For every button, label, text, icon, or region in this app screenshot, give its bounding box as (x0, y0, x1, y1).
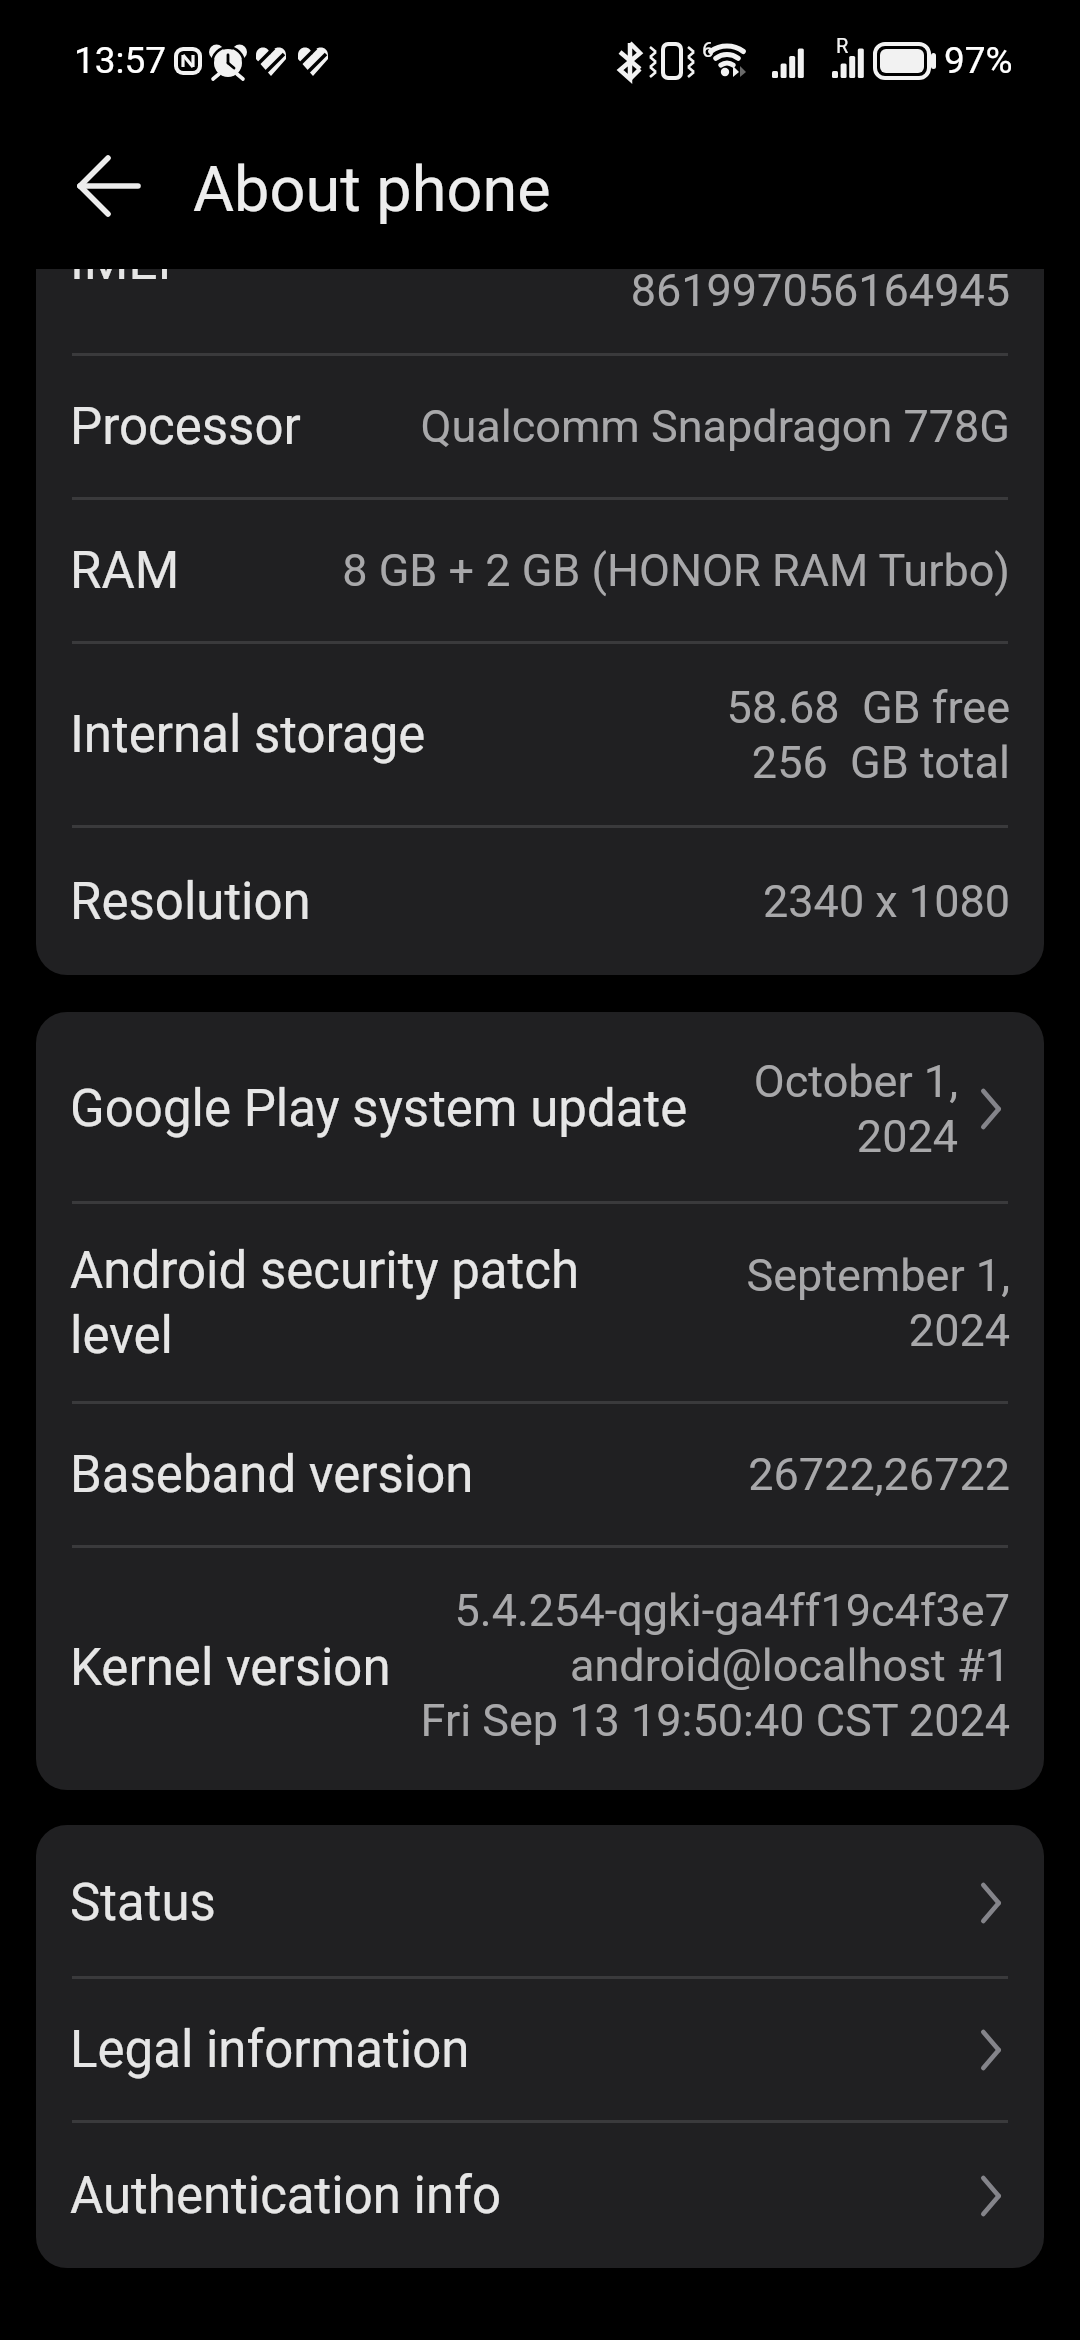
button[interactable]: Google Play system update (36, 1016, 1044, 1201)
staticText: 861997056164945 (630, 269, 1010, 317)
staticText: Status (70, 1873, 216, 1933)
staticText: Authentication info (70, 2166, 501, 2226)
button[interactable]: Android security patch level (36, 1204, 1044, 1401)
button[interactable]: Status (36, 1829, 1044, 1976)
staticText: R (836, 34, 849, 57)
staticText: Android security patch level (70, 1241, 580, 1365)
staticText: Qualcomm Snapdragon 778G (420, 400, 1010, 453)
staticText: October 1, 2024 (753, 1055, 958, 1163)
staticText: 6 (702, 38, 714, 63)
staticText: Kernel version (70, 1638, 391, 1698)
button[interactable]: RAM (36, 500, 1044, 641)
staticText: 58.68 GB free 256 GB total (726, 681, 1010, 789)
staticText: September 1, 2024 (746, 1249, 1010, 1357)
staticText: 97% (944, 39, 1013, 82)
staticText: 8 GB + 2 GB (HONOR RAM Turbo) (342, 544, 1010, 597)
button[interactable]: Internal storage (36, 644, 1044, 825)
button[interactable]: Legal information (36, 1979, 1044, 2120)
staticText: Baseband version (70, 1445, 474, 1505)
staticText: 26722,26722 (748, 1448, 1010, 1501)
staticText: 5.4.254-qgki-ga4ff19c4f3e7 android@local… (420, 1584, 1010, 1747)
button[interactable]: Kernel version (36, 1548, 1044, 1788)
staticText: Legal information (70, 2020, 470, 2080)
staticText: 2340 x 1080 (763, 875, 1010, 928)
staticText: About phone (193, 153, 551, 227)
staticText: Processor (70, 397, 301, 457)
button[interactable]: Resolution (36, 828, 1044, 975)
button[interactable]: Baseband version (36, 1404, 1044, 1545)
button[interactable]: Back (50, 142, 138, 230)
staticText: RAM (70, 541, 180, 601)
staticText: Resolution (70, 872, 311, 932)
staticText: Internal storage (70, 705, 426, 765)
staticText: Google Play system update (70, 1079, 688, 1139)
button[interactable]: Authentication info (36, 2123, 1044, 2268)
button[interactable]: Processor (36, 356, 1044, 497)
staticText: IMEI (70, 269, 172, 292)
staticText: 13:57 (74, 39, 167, 82)
button[interactable]: IMEI (36, 269, 1044, 353)
